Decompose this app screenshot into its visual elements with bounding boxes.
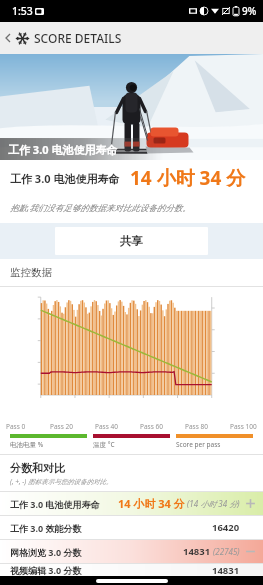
button[interactable]: 工作 3.0 效能分数 (0, 516, 263, 539)
button[interactable]: 工作 3.0 电池使用寿命 (0, 492, 263, 515)
button[interactable]: 网格浏览 3.0 分数 (0, 540, 263, 563)
staticText: 温度 °C (93, 440, 115, 449)
staticText: (22745) (213, 546, 240, 557)
staticText: 抱歉,我们没有足够的数据来对比此设备的分数。 (10, 202, 191, 214)
staticText: 16420 (212, 521, 240, 534)
staticText: Pass 40 (95, 422, 140, 431)
staticText: (14 小时 34 分) (187, 498, 240, 509)
staticText: Pass 80 (185, 422, 230, 431)
staticText: 工作 3.0 电池使用寿命 (10, 171, 120, 186)
staticText: 监控数据 (10, 266, 52, 279)
staticText: 14 小时 34 分 (130, 165, 246, 191)
staticText: 共享 (120, 234, 143, 248)
staticText: 1:53 (12, 4, 33, 18)
staticText: Pass 20 (50, 422, 95, 431)
staticText: (, +, -) 图标表示与您的设备的对比。 (10, 477, 113, 486)
staticText: 视频编辑 3.0 分数 (10, 564, 212, 576)
staticText: 14831 (212, 564, 240, 576)
staticText: Score per pass (176, 440, 221, 449)
button[interactable]: Back (0, 22, 16, 54)
staticText: 工作 3.0 电池使用寿命 (8, 142, 118, 157)
staticText: 9% (242, 4, 257, 18)
staticText: 工作 3.0 电池使用寿命 (10, 498, 118, 510)
staticText: Pass 0 (6, 422, 50, 431)
staticText: Pass 60 (140, 422, 185, 431)
staticText: 14831 (183, 545, 211, 558)
staticText: SCORE DETAILS (34, 30, 122, 46)
staticText: 分数和对比 (10, 461, 65, 475)
button[interactable]: 视频编辑 3.0 分数 (0, 564, 263, 576)
staticText: 电池电量 % (10, 440, 44, 449)
staticText: 网格浏览 3.0 分数 (10, 546, 183, 558)
button[interactable]: 共享 (55, 227, 208, 255)
staticText: 14 小时 34 分 (118, 496, 185, 511)
staticText: 工作 3.0 效能分数 (10, 522, 212, 534)
staticText: Pass 100 (230, 422, 257, 431)
